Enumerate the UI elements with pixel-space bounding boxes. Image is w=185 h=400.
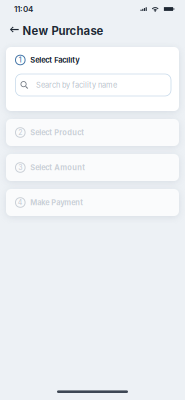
button[interactable]: 3: [6, 154, 179, 181]
staticText: 4: [18, 198, 23, 207]
staticText: 2: [18, 128, 22, 137]
button[interactable]: 2: [6, 119, 179, 146]
staticText: Search by facility name: [36, 80, 117, 89]
staticText: 11:04: [14, 4, 33, 14]
staticText: Select Product: [30, 128, 84, 137]
button[interactable]: Back: [0, 25, 22, 37]
staticText: New Purchase: [22, 24, 103, 38]
staticText: Make Payment: [30, 198, 83, 207]
staticText: Select Amount: [30, 163, 85, 172]
button[interactable]: Search by facility name: [15, 74, 171, 96]
staticText: 3: [18, 163, 22, 172]
staticText: 1: [19, 56, 22, 64]
button[interactable]: 4: [6, 189, 179, 216]
staticText: Select Facility: [30, 55, 79, 64]
